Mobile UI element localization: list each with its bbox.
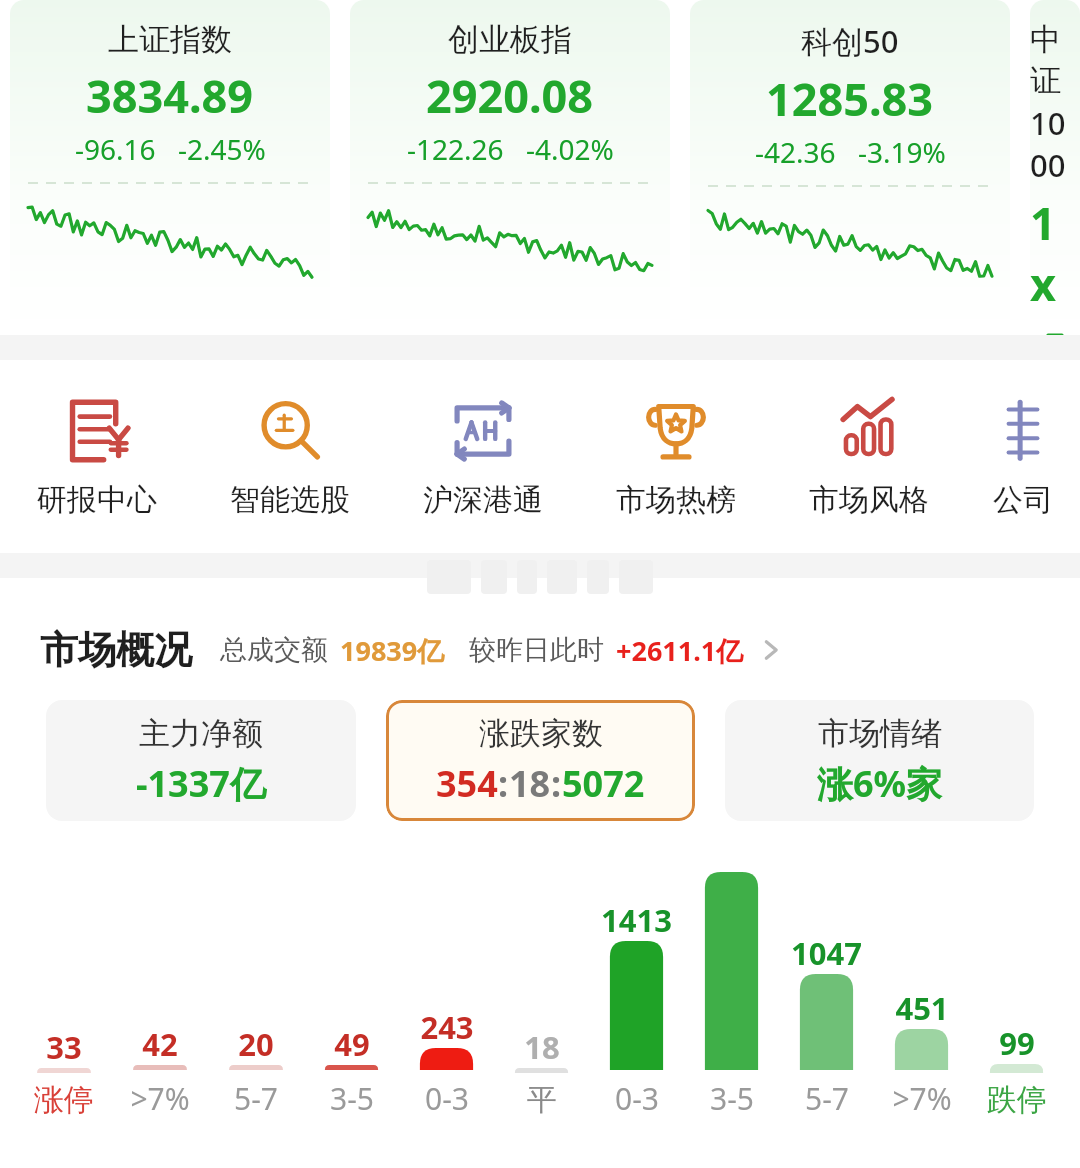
staticText: 中证1000 xyxy=(1030,20,1080,186)
button[interactable]: 中证1000 xyxy=(1030,0,1080,335)
staticText: 5-7 xyxy=(805,1078,849,1119)
staticText: +2611.1亿 xyxy=(616,632,744,669)
staticText: 3-5 xyxy=(710,1078,754,1119)
staticText: 上证指数 xyxy=(108,20,232,59)
button[interactable]: 42 xyxy=(112,872,208,1119)
staticText: 智能选股 xyxy=(230,481,350,519)
button[interactable]: 公司 xyxy=(965,395,1080,519)
button[interactable]: 451 xyxy=(874,872,969,1119)
button[interactable]: 1413 xyxy=(589,872,684,1119)
staticText: 20 xyxy=(238,1023,274,1065)
staticText: 涨停 xyxy=(34,1081,94,1119)
staticText: : xyxy=(551,759,562,808)
staticText: 99 xyxy=(999,1022,1035,1064)
button[interactable]: 研报中心 xyxy=(0,395,193,519)
staticText: 1413 xyxy=(601,899,672,941)
button[interactable]: 市场情绪 xyxy=(725,700,1034,821)
staticText: -96.16 xyxy=(75,130,156,168)
staticText: 公司 xyxy=(993,481,1053,519)
staticText: 0-3 xyxy=(615,1078,659,1119)
staticText: 较昨日此时 xyxy=(469,633,604,667)
button[interactable]: 2161 xyxy=(684,872,779,1119)
staticText: >7% xyxy=(892,1078,952,1119)
button[interactable]: 市场热榜 xyxy=(579,395,772,519)
staticText: 3834.89 xyxy=(86,65,254,126)
staticText: 科创50 xyxy=(801,20,899,62)
staticText: 3-5 xyxy=(330,1078,374,1119)
staticText: 18 xyxy=(509,759,551,808)
staticText: 1xxx xyxy=(1030,192,1080,335)
staticText: 市场概况 xyxy=(40,626,192,674)
button[interactable]: 市场概况 xyxy=(40,626,1054,674)
staticText: 研报中心 xyxy=(37,481,157,519)
button[interactable]: 智能选股 xyxy=(193,395,386,519)
button[interactable]: 市场风格 xyxy=(772,395,965,519)
staticText: 19839亿 xyxy=(340,632,445,669)
staticText: : xyxy=(498,759,509,808)
button[interactable]: 18 xyxy=(494,875,589,1119)
staticText: -4.02% xyxy=(526,130,614,168)
staticText: -2.45% xyxy=(178,130,266,168)
staticText: 1285.83 xyxy=(766,68,934,129)
button[interactable]: 沪深港通 xyxy=(386,395,579,519)
staticText: 市场热榜 xyxy=(616,481,736,519)
button[interactable]: 涨跌家数 xyxy=(386,700,695,821)
staticText: 1047 xyxy=(791,932,862,974)
staticText: 42 xyxy=(142,1023,178,1065)
button[interactable]: 49 xyxy=(304,872,399,1119)
staticText: 5-7 xyxy=(234,1078,278,1119)
staticText: -1337亿 xyxy=(136,759,266,808)
staticText: >7% xyxy=(130,1078,190,1119)
staticText: 18 xyxy=(524,1026,560,1068)
staticText: -3.19% xyxy=(858,133,946,171)
button[interactable]: 创业板指 xyxy=(350,0,670,335)
staticText: 涨6%家 xyxy=(817,759,943,808)
staticText: -42.36 xyxy=(755,133,836,171)
staticText: 33 xyxy=(46,1026,82,1068)
button[interactable]: 主力净额 xyxy=(46,700,356,821)
button[interactable]: 243 xyxy=(399,872,494,1119)
staticText: -122.26 xyxy=(407,130,504,168)
staticText: 0-3 xyxy=(425,1078,469,1119)
button[interactable]: 20 xyxy=(208,872,304,1119)
staticText: 跌停 xyxy=(987,1081,1047,1119)
staticText: 主力净额 xyxy=(139,714,263,753)
button[interactable]: 科创50 xyxy=(690,0,1010,335)
staticText: 创业板指 xyxy=(448,20,572,59)
staticText: 243 xyxy=(420,1006,474,1048)
staticText: 49 xyxy=(334,1023,370,1065)
staticText: 总成交额 xyxy=(220,633,328,667)
staticText: 平 xyxy=(527,1081,557,1119)
staticText: 5072 xyxy=(562,759,645,808)
button[interactable]: 33 xyxy=(16,875,112,1119)
button[interactable]: 1047 xyxy=(779,872,874,1119)
button[interactable]: 上证指数 xyxy=(10,0,330,335)
staticText: 市场情绪 xyxy=(818,714,942,753)
staticText: 市场风格 xyxy=(809,481,929,519)
staticText: 451 xyxy=(895,987,949,1029)
button[interactable]: 99 xyxy=(969,875,1064,1119)
staticText: 涨跌家数 xyxy=(479,714,603,753)
staticText: 354 xyxy=(436,759,498,808)
staticText: 沪深港通 xyxy=(423,481,543,519)
staticText: 2920.08 xyxy=(426,65,594,126)
